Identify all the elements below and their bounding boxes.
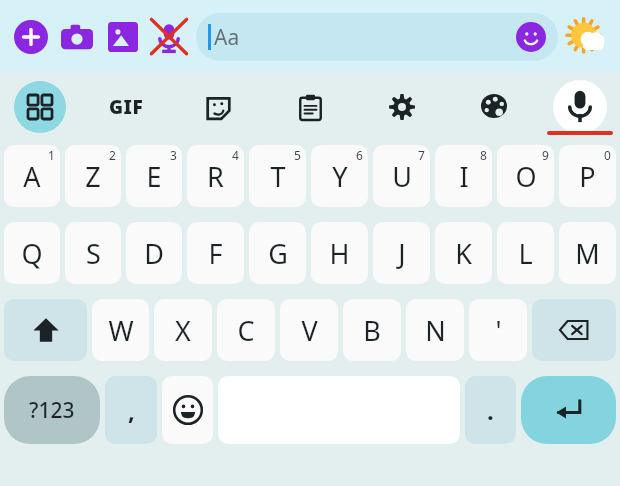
button[interactable]: Shift [4,299,87,361]
button[interactable]: I [435,145,492,207]
button[interactable]: N [406,299,464,361]
staticText: K [455,235,472,272]
staticText: X [175,312,191,349]
button[interactable]: H [311,222,368,284]
staticText: 4 [232,147,239,163]
staticText: F [208,235,223,272]
staticText: J [398,235,406,272]
button[interactable]: Emoji [516,22,546,52]
button[interactable]: Settings [356,73,448,141]
staticText: 3 [170,147,177,163]
staticText: Q [21,235,43,272]
staticText: D [144,235,164,272]
button[interactable]: Y [311,145,368,207]
button[interactable]: G [249,222,306,284]
button[interactable]: W [92,299,149,361]
staticText: 9 [542,147,549,163]
staticText: E [146,158,162,195]
staticText: ?123 [29,396,75,425]
staticText: R [207,158,224,195]
staticText: 6 [356,147,363,163]
staticText: 7 [418,147,425,163]
button[interactable]: Emoji keyboard [162,376,213,444]
button[interactable]: , [105,376,157,444]
button[interactable]: Gallery [100,14,146,60]
button[interactable]: A [4,145,60,207]
staticText: 1 [48,147,55,163]
staticText: U [392,158,412,195]
button[interactable]: ?123 [4,376,100,444]
button[interactable]: R [187,145,244,207]
button[interactable]: K [435,222,492,284]
staticText: O [515,158,537,195]
staticText: 0 [604,147,611,163]
button[interactable]: . [465,376,516,444]
staticText: 2 [109,147,116,163]
button[interactable]: Backspace [532,299,616,361]
staticText: W [108,312,134,349]
staticText: N [425,312,446,349]
staticText: P [579,158,596,195]
button[interactable]: F [187,222,244,284]
button[interactable]: Z [65,145,121,207]
staticText: 8 [480,147,487,163]
button[interactable]: Keyboard modes [0,73,80,141]
staticText: C [237,312,255,349]
staticText: ' [495,312,502,349]
button[interactable]: M [559,222,616,284]
staticText: Aa [214,23,240,52]
button[interactable]: Weather [562,12,612,62]
staticText: H [329,235,350,272]
staticText: M [575,235,600,272]
staticText: L [518,235,533,272]
button[interactable]: Microphone off [146,14,192,60]
button[interactable]: T [249,145,306,207]
button[interactable]: B [343,299,401,361]
button[interactable]: J [373,222,430,284]
staticText: GIF [109,94,144,120]
button[interactable]: E [126,145,182,207]
button[interactable]: C [217,299,275,361]
staticText: S [86,235,101,272]
button[interactable]: Themes [448,73,540,141]
staticText: . [487,394,494,427]
button[interactable]: D [126,222,182,284]
button[interactable]: X [154,299,212,361]
staticText: B [363,312,381,349]
button[interactable]: Aa [196,13,558,61]
button[interactable]: Clipboard [264,73,356,141]
button[interactable]: Stickers [172,73,264,141]
staticText: 5 [294,147,301,163]
button[interactable]: Add [8,14,54,60]
staticText: I [459,158,469,195]
staticText: A [23,158,41,195]
staticText: G [268,235,288,272]
button[interactable]: Voice input [540,73,620,141]
button[interactable]: S [65,222,121,284]
button[interactable]: ' [469,299,527,361]
button[interactable]: O [497,145,554,207]
button[interactable]: GIF [80,73,172,141]
button[interactable]: Q [4,222,60,284]
staticText: V [301,312,318,349]
staticText: Z [85,158,101,195]
button[interactable]: V [280,299,338,361]
staticText: , [128,394,135,427]
button[interactable]: Camera [54,14,100,60]
staticText: T [270,158,286,195]
button[interactable]: Enter [521,376,616,444]
button[interactable]: L [497,222,554,284]
button[interactable]: U [373,145,430,207]
staticText: Y [332,158,348,195]
button[interactable]: P [559,145,616,207]
